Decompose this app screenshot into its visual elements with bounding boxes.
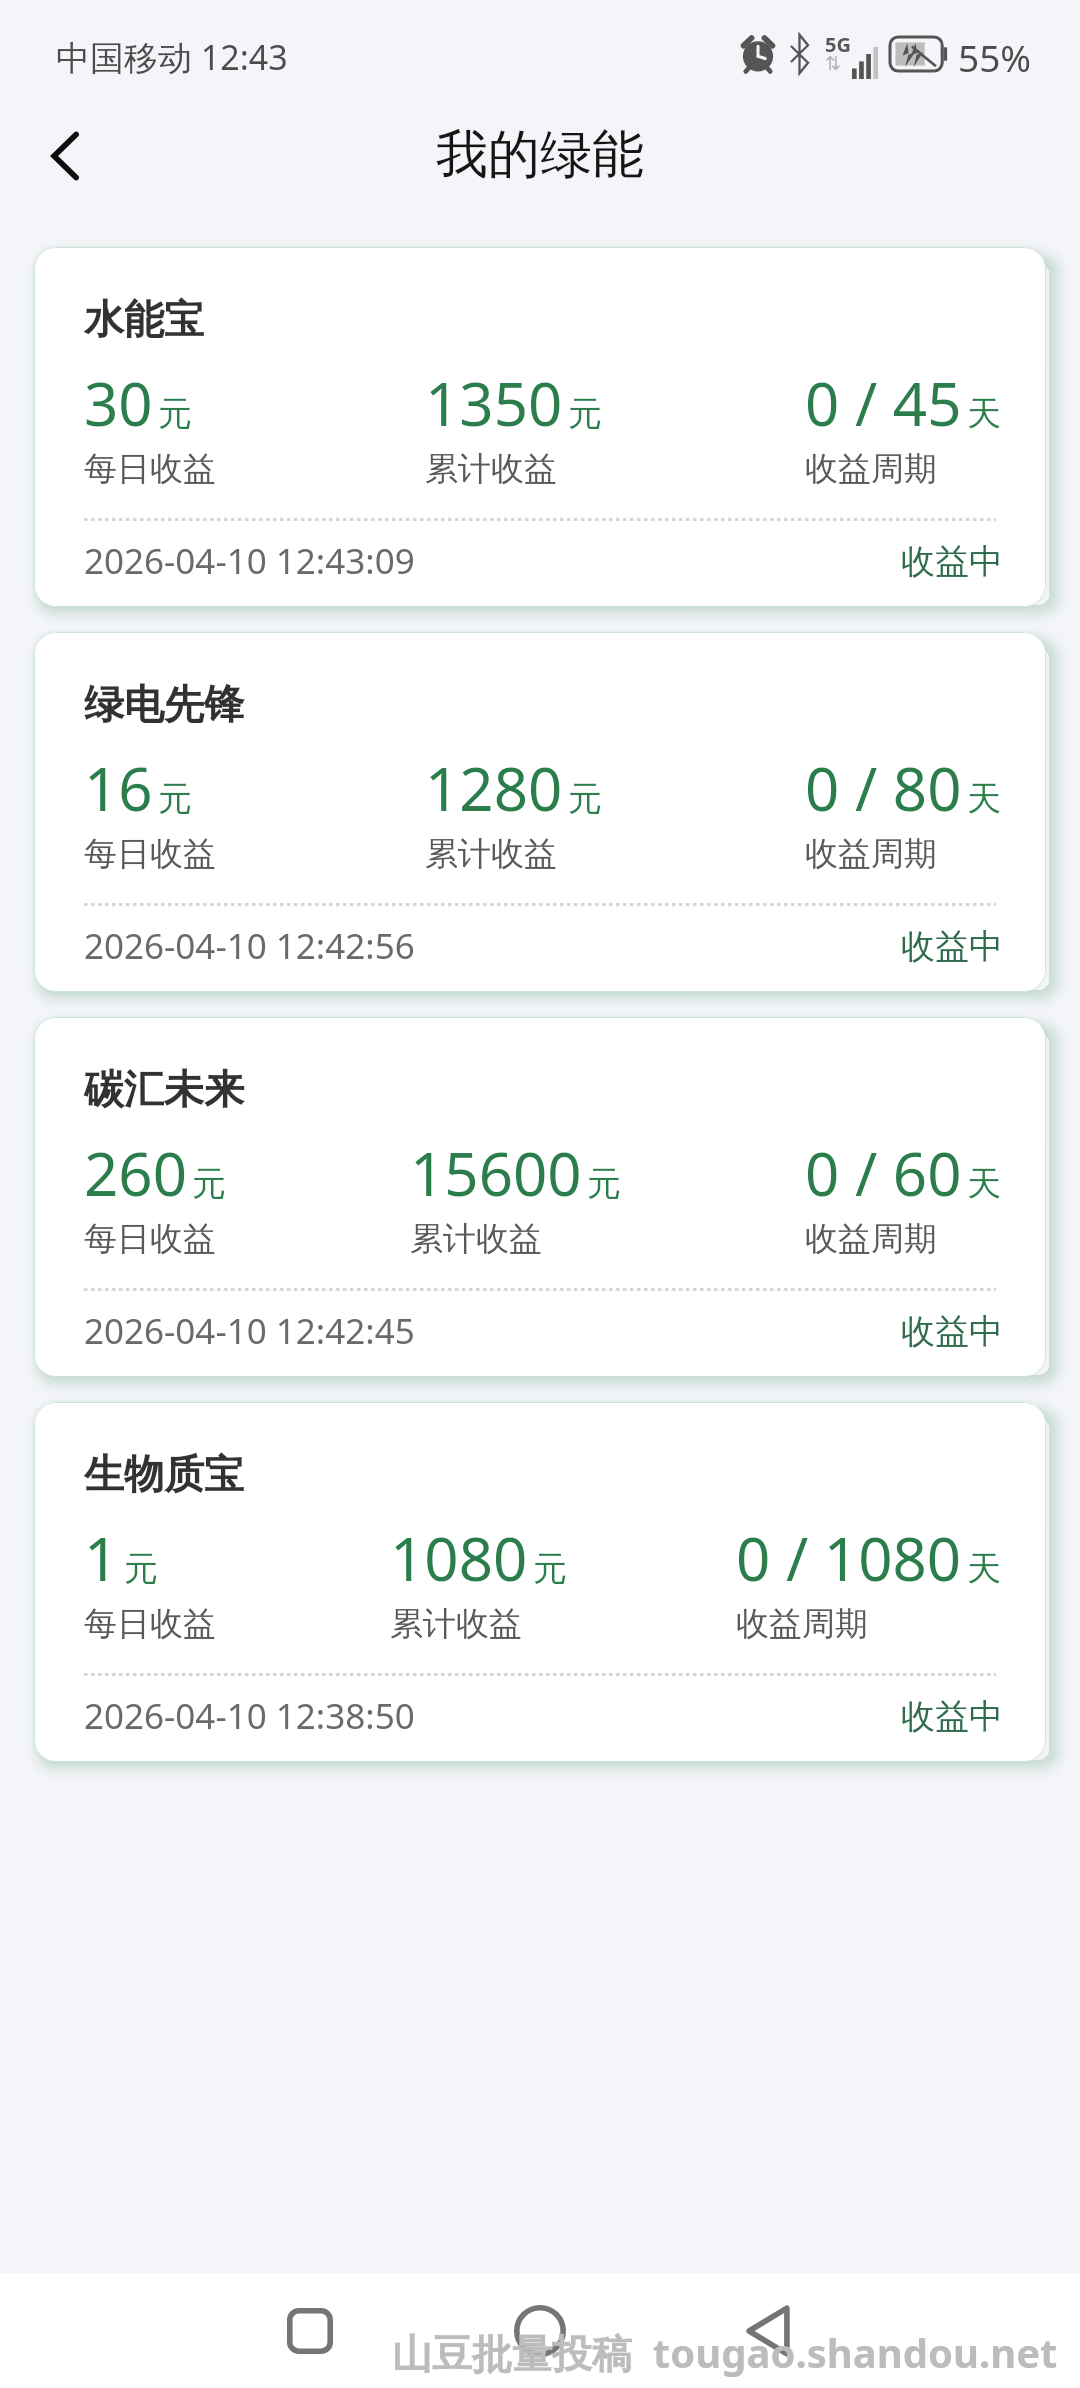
staticText: 天 <box>967 777 1001 820</box>
staticText: 天 <box>967 1547 1001 1590</box>
staticText: 天 <box>967 1162 1001 1205</box>
staticText: 2026-04-10 12:42:45 <box>84 1307 415 1355</box>
staticText: 收益中 <box>901 1695 1003 1738</box>
staticText: 累计收益 <box>425 448 557 490</box>
staticText: 55% <box>958 32 1032 82</box>
staticText: 2026-04-10 12:42:56 <box>84 922 415 970</box>
staticText: 每日收益 <box>84 833 216 875</box>
staticText: 天 <box>967 392 1001 435</box>
staticText: 绿电先锋 <box>84 679 244 729</box>
staticText: 元 <box>533 1547 567 1590</box>
staticText: 碳汇未来 <box>84 1064 244 1114</box>
button[interactable]: 绿电先锋 <box>34 632 1046 992</box>
staticText: 260 <box>84 1132 187 1214</box>
staticText: 每日收益 <box>84 1218 216 1260</box>
staticText: 每日收益 <box>84 1603 216 1645</box>
staticText: 元 <box>568 777 602 820</box>
staticText: 收益周期 <box>736 1603 868 1645</box>
staticText: 元 <box>587 1162 621 1205</box>
button[interactable]: Home <box>484 2275 596 2387</box>
staticText: 中国移动 12:43 <box>56 34 288 80</box>
staticText: 收益中 <box>901 540 1003 583</box>
staticText: 元 <box>124 1547 158 1590</box>
button[interactable]: Back <box>13 101 123 211</box>
staticText: 收益中 <box>901 925 1003 968</box>
button[interactable]: 碳汇未来 <box>34 1017 1046 1377</box>
staticText: 2026-04-10 12:38:50 <box>84 1692 415 1740</box>
staticText: 元 <box>158 392 192 435</box>
staticText: 累计收益 <box>410 1218 542 1260</box>
staticText: 1 <box>84 1517 119 1599</box>
staticText: 收益中 <box>901 1310 1003 1353</box>
staticText: 15600 <box>410 1132 582 1214</box>
staticText: 生物质宝 <box>84 1449 244 1499</box>
staticText: 0 / 60 <box>805 1132 962 1214</box>
staticText: 16 <box>84 747 153 829</box>
staticText: 5G <box>825 31 851 58</box>
staticText: 1080 <box>390 1517 528 1599</box>
staticText: 累计收益 <box>425 833 557 875</box>
staticText: 我的绿能 <box>436 122 644 188</box>
staticText: 30 <box>84 362 153 444</box>
staticText: 2026-04-10 12:43:09 <box>84 537 415 585</box>
staticText: 累计收益 <box>390 1603 522 1645</box>
staticText: 1350 <box>425 362 563 444</box>
staticText: 收益周期 <box>805 1218 937 1260</box>
staticText: 0 / 1080 <box>736 1517 962 1599</box>
staticText: 0 / 80 <box>805 747 962 829</box>
staticText: 0 / 45 <box>805 362 962 444</box>
staticText: 收益周期 <box>805 448 937 490</box>
staticText: 元 <box>568 392 602 435</box>
staticText: 1280 <box>425 747 563 829</box>
staticText: 收益周期 <box>805 833 937 875</box>
staticText: 每日收益 <box>84 448 216 490</box>
staticText: 水能宝 <box>84 294 204 344</box>
staticText: 山豆批量投稿 tougao.shandou.net <box>392 2325 1080 2380</box>
staticText: 元 <box>192 1162 226 1205</box>
button[interactable]: 生物质宝 <box>34 1402 1046 1762</box>
button[interactable]: Recents <box>254 2275 366 2387</box>
button[interactable]: Back <box>712 2275 824 2387</box>
staticText: 元 <box>158 777 192 820</box>
button[interactable]: 水能宝 <box>34 247 1046 607</box>
staticText: ⇅ <box>825 52 841 74</box>
